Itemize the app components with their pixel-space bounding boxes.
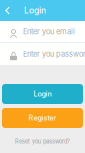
staticText: Enter you password <box>23 49 85 58</box>
button[interactable]: Login <box>2 84 83 104</box>
staticText: Reset you password? <box>15 138 70 145</box>
staticText: Login <box>33 90 51 98</box>
staticText: Register <box>28 114 56 122</box>
staticText: Login <box>24 5 46 16</box>
button[interactable]: Reset you password? <box>0 136 85 147</box>
staticText: Enter you email <box>23 27 75 36</box>
button[interactable]: Register <box>2 108 83 128</box>
button[interactable]: Back <box>0 0 15 21</box>
